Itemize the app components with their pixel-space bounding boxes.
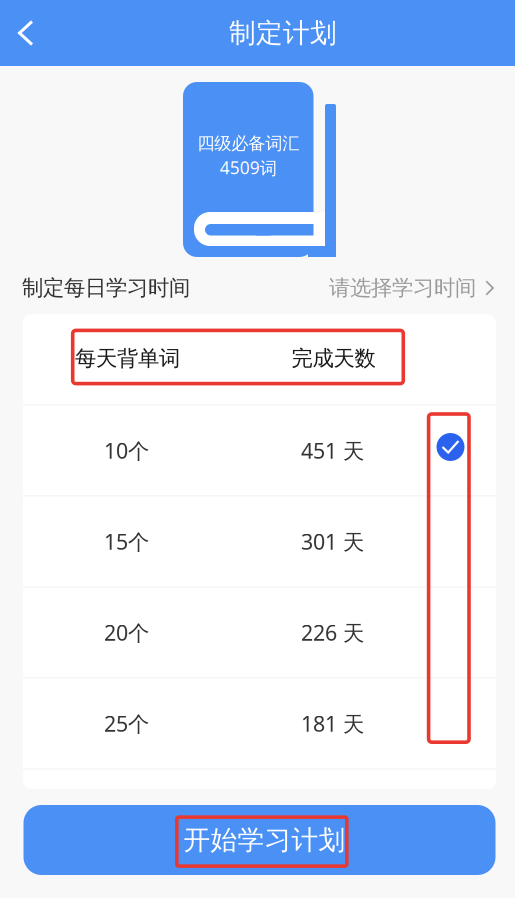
staticText: 301 天 <box>301 527 364 556</box>
staticText: 20个 <box>104 618 149 647</box>
button[interactable]: 请选择学习时间 <box>315 273 495 303</box>
staticText: 226 天 <box>301 618 364 647</box>
button[interactable]: 20个 <box>23 587 496 677</box>
staticText: 每天背单词 <box>75 345 180 372</box>
staticText: 25个 <box>104 709 149 738</box>
staticText: 制定每日学习时间 <box>22 275 190 301</box>
staticText: 451 天 <box>301 436 364 465</box>
button[interactable]: 25个 <box>23 678 496 768</box>
staticText: 完成天数 <box>291 345 375 372</box>
button[interactable]: 10个 <box>23 405 496 495</box>
staticText: 请选择学习时间 <box>329 275 476 301</box>
staticText: 四级必备词汇 <box>197 133 299 154</box>
button[interactable]: 开始学习计划 <box>23 805 495 875</box>
staticText: 181 天 <box>301 709 364 738</box>
staticText: 15个 <box>104 527 149 556</box>
staticText: 4509词 <box>220 156 277 179</box>
button[interactable]: 15个 <box>23 496 496 586</box>
staticText: 开始学习计划 <box>183 824 345 856</box>
staticText: 10个 <box>104 436 149 465</box>
staticText: 制定计划 <box>229 17 337 49</box>
button[interactable]: Back <box>2 9 50 57</box>
